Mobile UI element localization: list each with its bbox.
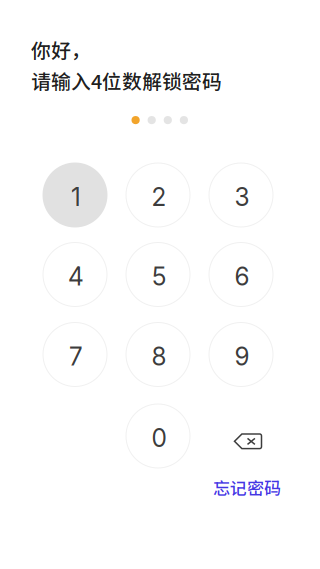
- staticText: 8: [151, 342, 166, 371]
- button[interactable]: 5: [125, 242, 190, 307]
- staticText: 9: [234, 342, 249, 371]
- staticText: 你好，: [31, 35, 91, 64]
- button[interactable]: 3: [208, 162, 273, 227]
- staticText: 0: [151, 423, 166, 453]
- staticText: 请输入4位数解锁密码: [31, 66, 222, 95]
- button[interactable]: 1: [42, 162, 107, 227]
- button[interactable]: 8: [125, 322, 190, 387]
- staticText: 3: [234, 182, 249, 212]
- button[interactable]: 0: [125, 403, 190, 468]
- staticText: 4: [68, 262, 84, 291]
- staticText: 1: [71, 182, 81, 212]
- button[interactable]: 2: [125, 162, 190, 227]
- staticText: 5: [152, 262, 166, 291]
- staticText: 6: [234, 262, 249, 291]
- button[interactable]: 9: [208, 322, 273, 387]
- staticText: 忘记密码: [213, 475, 281, 500]
- button[interactable]: 4: [42, 242, 107, 307]
- staticText: 2: [151, 182, 166, 212]
- button[interactable]: 6: [208, 242, 273, 307]
- button[interactable]: Delete: [215, 409, 280, 474]
- button[interactable]: 忘记密码: [213, 475, 281, 500]
- button[interactable]: 7: [42, 322, 107, 387]
- staticText: 7: [69, 342, 83, 371]
